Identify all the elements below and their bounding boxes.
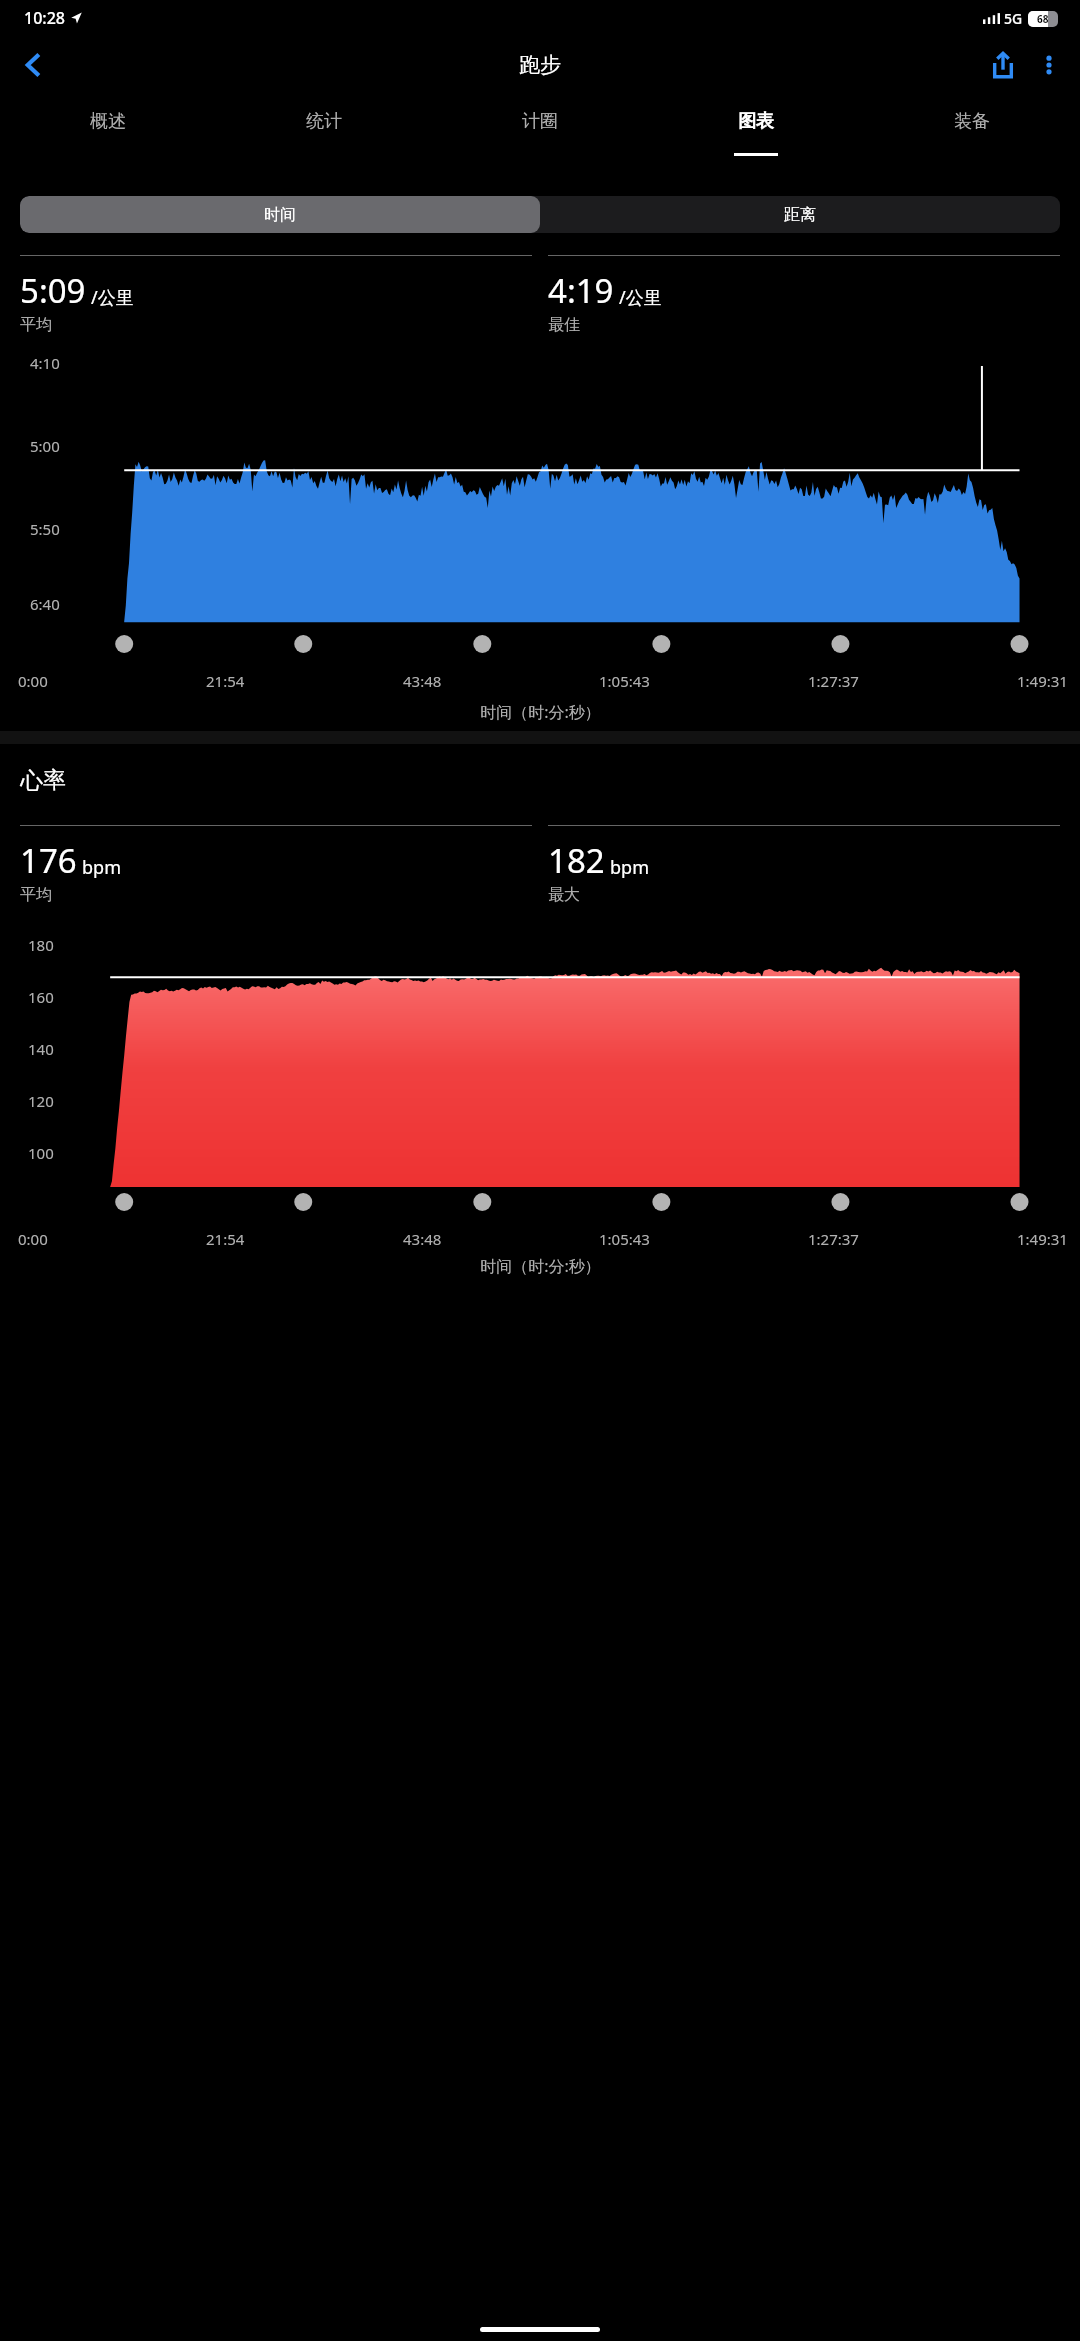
staticText: 5:00 (30, 436, 60, 456)
staticText: 统计 (306, 110, 342, 133)
staticText: 100 (28, 1143, 54, 1163)
staticText: 装备 (954, 110, 990, 133)
staticText: 43:48 (403, 671, 442, 691)
staticText: 21:54 (206, 1229, 245, 1249)
staticText: 平均 (20, 315, 52, 335)
staticText: 1:49:31 (1017, 671, 1068, 691)
staticText: 1:27:37 (808, 671, 859, 691)
button[interactable]: 装备 (864, 94, 1080, 178)
staticText: 1:27:37 (808, 1229, 859, 1249)
staticText: 21:54 (206, 671, 245, 691)
staticText: 4:10 (30, 353, 60, 373)
staticText: 1:05:43 (599, 671, 650, 691)
button[interactable]: Back (10, 42, 56, 88)
staticText: 最大 (548, 885, 580, 905)
staticText: 43:48 (403, 1229, 442, 1249)
button[interactable]: 概述 (0, 94, 216, 178)
staticText: 图表 (738, 110, 774, 133)
staticText: 5:09 (20, 268, 86, 313)
staticText: 最佳 (548, 315, 580, 335)
staticText: 5:50 (30, 519, 60, 539)
button[interactable]: 计圈 (432, 94, 648, 178)
staticText: bpm (82, 855, 121, 880)
staticText: bpm (610, 855, 649, 880)
staticText: 120 (28, 1091, 54, 1111)
staticText: 68 (1037, 12, 1049, 26)
staticText: 1:05:43 (599, 1229, 650, 1249)
button[interactable]: 图表 (648, 94, 864, 178)
staticText: 140 (28, 1039, 54, 1059)
staticText: 4:19 (548, 268, 614, 313)
button[interactable]: 距离 (540, 196, 1060, 233)
staticText: 5G (1004, 9, 1023, 28)
button[interactable]: 统计 (216, 94, 432, 178)
staticText: 心率 (20, 766, 66, 795)
staticText: 时间（时:分:秒） (480, 701, 601, 723)
staticText: 1:49:31 (1017, 1229, 1068, 1249)
button[interactable]: More options (1026, 42, 1072, 88)
staticText: 跑步 (519, 52, 561, 78)
staticText: 0:00 (18, 671, 48, 691)
staticText: 距离 (784, 205, 816, 225)
staticText: 182 (548, 838, 605, 883)
staticText: 时间（时:分:秒） (480, 1255, 601, 1277)
staticText: 176 (20, 838, 77, 883)
staticText: 0:00 (18, 1229, 48, 1249)
staticText: 180 (28, 935, 54, 955)
staticText: /公里 (91, 285, 134, 310)
staticText: 6:40 (30, 594, 60, 614)
button[interactable]: Share (980, 42, 1026, 88)
staticText: 平均 (20, 885, 52, 905)
staticText: 160 (28, 987, 54, 1007)
staticText: /公里 (619, 285, 662, 310)
staticText: 计圈 (522, 110, 558, 133)
staticText: 概述 (90, 110, 126, 133)
staticText: 时间 (264, 205, 296, 225)
button[interactable]: 时间 (20, 196, 540, 233)
staticText: 10:28 (24, 7, 65, 29)
